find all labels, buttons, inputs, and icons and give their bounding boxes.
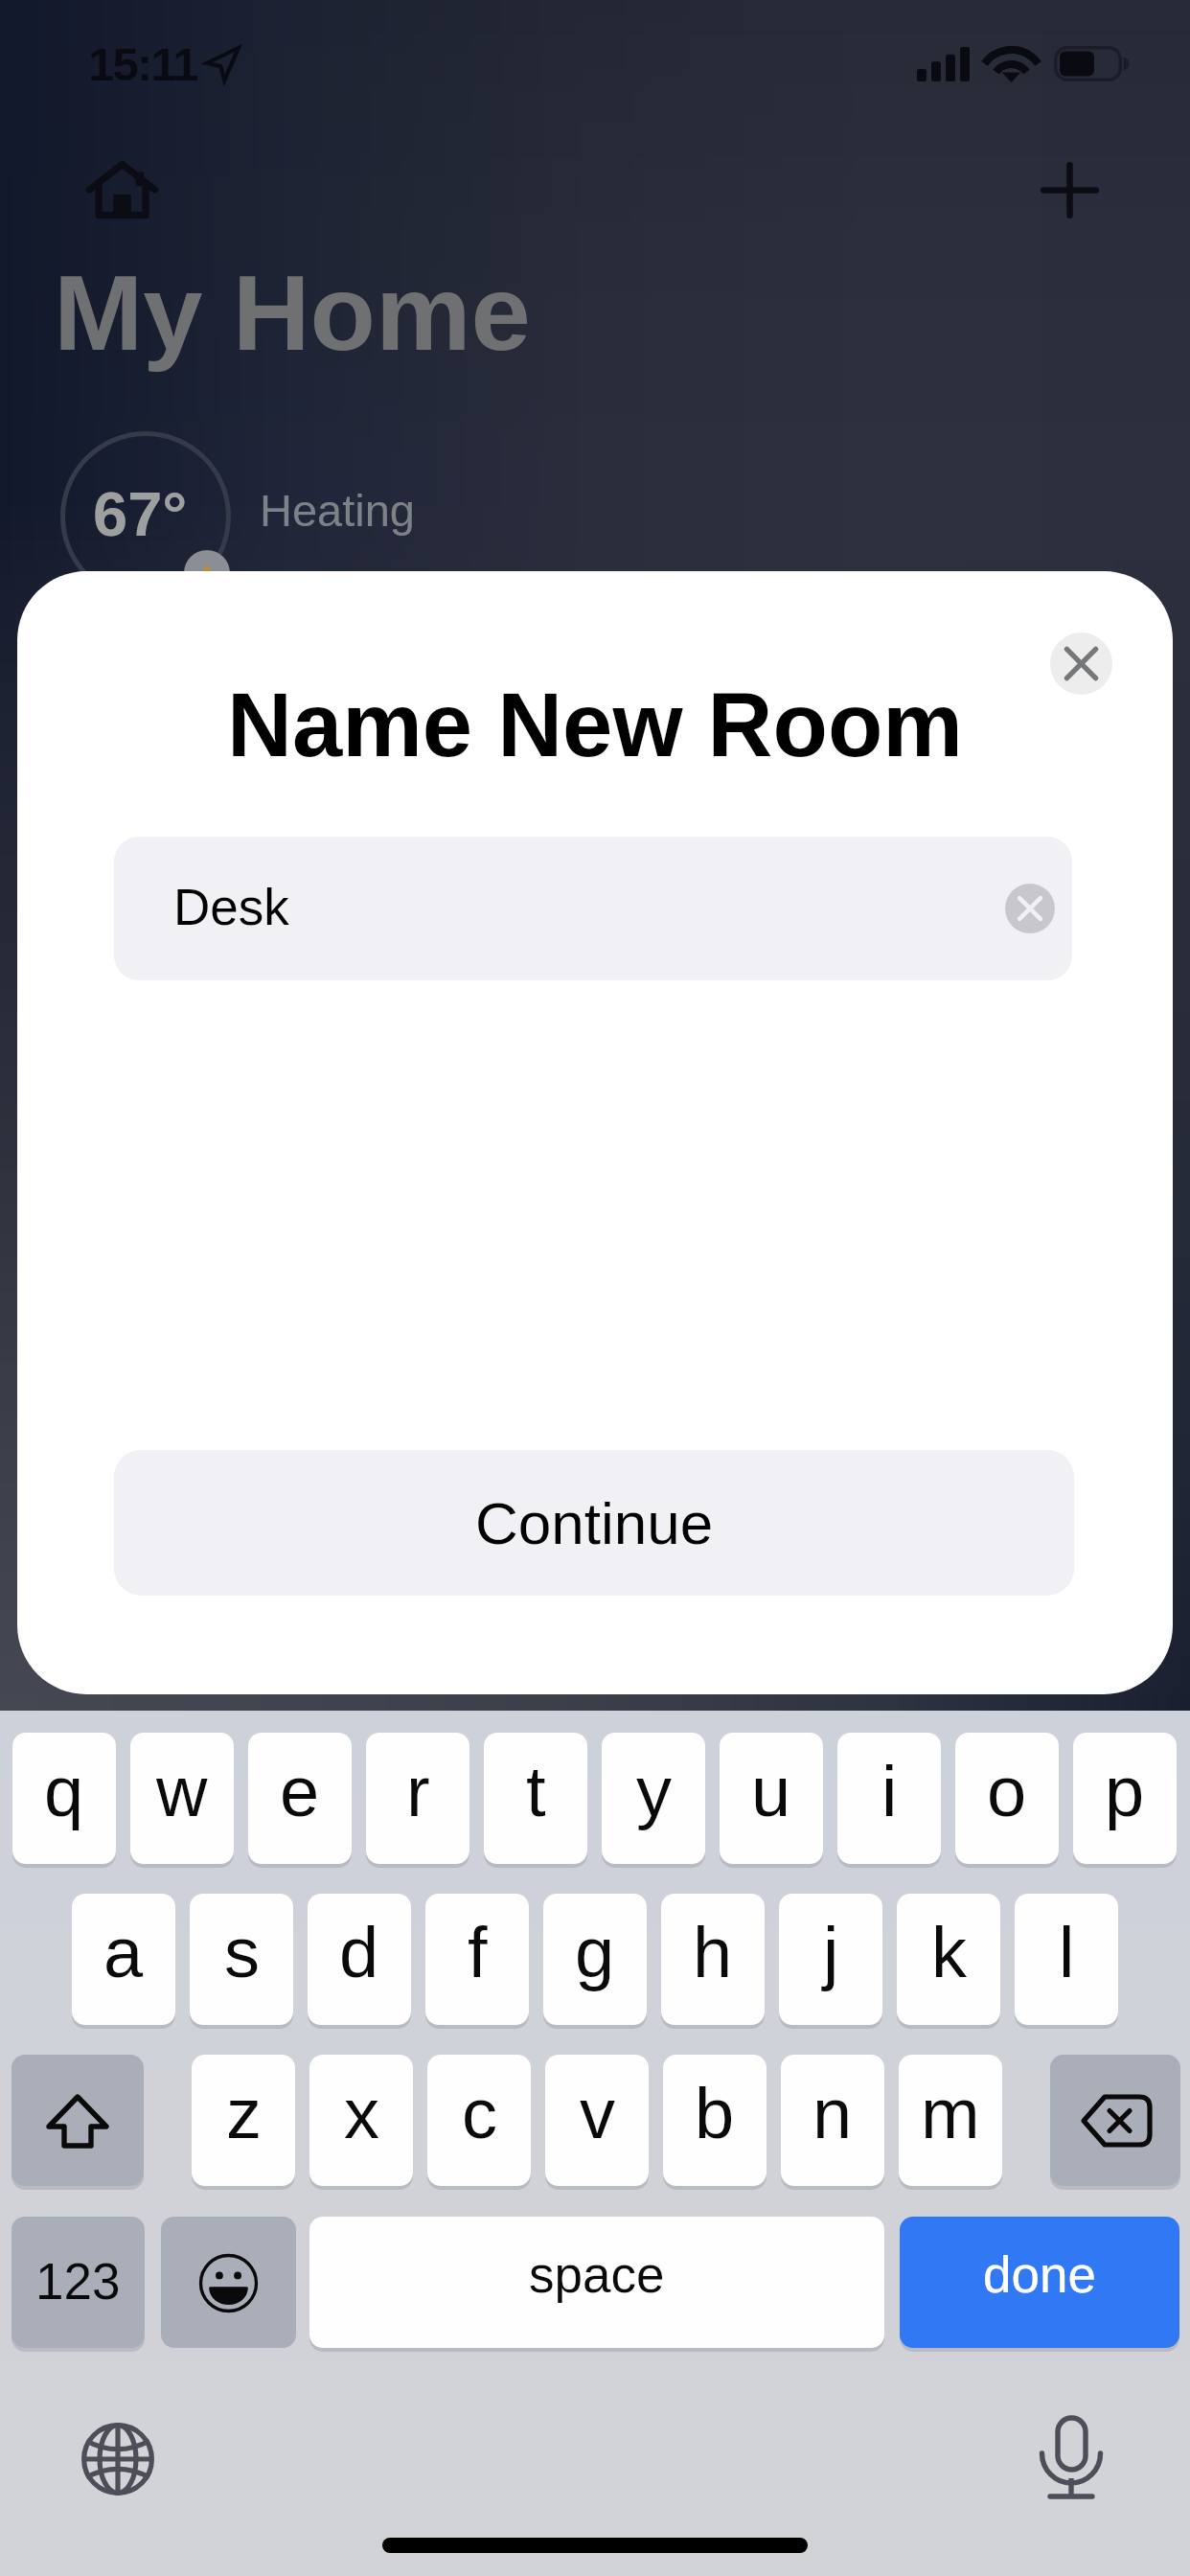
button[interactable]: i — [837, 1733, 941, 1864]
button[interactable]: v — [545, 2055, 649, 2186]
button[interactable]: b — [663, 2055, 767, 2186]
button[interactable]: Close — [1050, 632, 1112, 695]
button[interactable]: t — [484, 1733, 587, 1864]
button[interactable]: r — [366, 1733, 469, 1864]
staticText: v — [580, 2074, 615, 2153]
button[interactable]: Desk — [114, 837, 1072, 980]
button[interactable]: Shift — [11, 2055, 144, 2186]
staticText: 15:11 — [88, 38, 197, 91]
button[interactable]: k — [897, 1894, 1000, 2025]
staticText: f — [468, 1913, 488, 1992]
button[interactable]: m — [899, 2055, 1002, 2186]
staticText: Desk — [173, 879, 289, 935]
button[interactable]: p — [1073, 1733, 1177, 1864]
staticText: x — [344, 2074, 379, 2153]
staticText: i — [881, 1752, 898, 1831]
button[interactable]: j — [779, 1894, 882, 2025]
staticText: m — [921, 2074, 980, 2153]
button[interactable]: y — [602, 1733, 705, 1864]
staticText: d — [339, 1913, 379, 1992]
staticText: s — [224, 1913, 260, 1992]
button[interactable]: n — [781, 2055, 884, 2186]
button[interactable]: Continue — [114, 1450, 1074, 1596]
staticText: u — [751, 1752, 791, 1831]
button[interactable]: Clear text — [1005, 884, 1055, 933]
button[interactable]: o — [955, 1733, 1059, 1864]
staticText: c — [462, 2074, 497, 2153]
button[interactable]: e — [248, 1733, 352, 1864]
button[interactable]: u — [720, 1733, 823, 1864]
staticText: l — [1059, 1913, 1075, 1992]
button[interactable]: Change keyboard — [81, 2423, 154, 2495]
staticText: g — [575, 1913, 615, 1992]
staticText: Name New Room — [17, 675, 1173, 775]
staticText: h — [693, 1913, 733, 1992]
button[interactable]: Emoji — [161, 2217, 296, 2348]
button[interactable]: a — [72, 1894, 175, 2025]
staticText: a — [103, 1913, 144, 1992]
staticText: Heating — [260, 485, 415, 536]
staticText: Continue — [475, 1490, 714, 1556]
button[interactable]: f — [425, 1894, 529, 2025]
staticText: j — [823, 1913, 839, 1992]
staticText: 123 — [35, 2253, 121, 2310]
button[interactable]: s — [190, 1894, 293, 2025]
staticText: q — [44, 1752, 84, 1831]
staticText: e — [280, 1752, 320, 1831]
button[interactable]: q — [12, 1733, 116, 1864]
staticText: t — [526, 1752, 546, 1831]
staticText: p — [1105, 1752, 1145, 1831]
staticText: z — [226, 2074, 262, 2153]
button[interactable]: Dictation — [1040, 2413, 1103, 2501]
staticText: space — [529, 2246, 665, 2303]
button[interactable]: 123 — [11, 2217, 145, 2348]
staticText: 67° — [93, 479, 188, 549]
button[interactable]: h — [661, 1894, 765, 2025]
button[interactable]: c — [427, 2055, 531, 2186]
staticText: o — [987, 1752, 1027, 1831]
staticText: k — [931, 1913, 967, 1992]
button[interactable]: done — [900, 2217, 1179, 2348]
button[interactable]: g — [543, 1894, 647, 2025]
staticText: w — [156, 1752, 208, 1831]
button[interactable]: Backspace — [1050, 2055, 1180, 2186]
button[interactable]: Home — [88, 160, 156, 219]
staticText: n — [812, 2074, 853, 2153]
staticText: r — [406, 1752, 430, 1831]
staticText: done — [983, 2246, 1096, 2303]
button[interactable]: l — [1015, 1894, 1118, 2025]
staticText: b — [695, 2074, 735, 2153]
button[interactable]: w — [130, 1733, 234, 1864]
button[interactable]: Add — [1041, 162, 1099, 218]
button[interactable]: z — [192, 2055, 295, 2186]
button[interactable]: space — [309, 2217, 884, 2348]
button[interactable]: x — [309, 2055, 413, 2186]
staticText: My Home — [54, 253, 531, 373]
staticText: y — [636, 1752, 672, 1831]
button[interactable]: d — [308, 1894, 411, 2025]
